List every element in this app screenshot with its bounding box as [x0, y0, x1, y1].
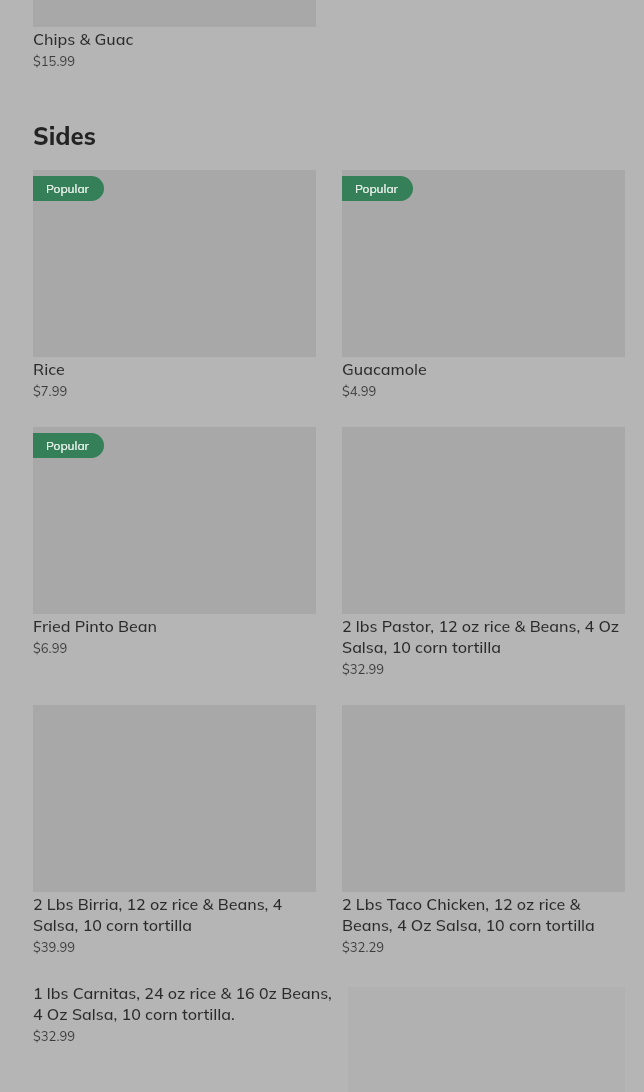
- staticText: Popular: [355, 181, 398, 196]
- staticText: 2 Lbs Taco Chicken, 12 oz rice & Beans, …: [342, 894, 625, 935]
- button[interactable]: Popular: [342, 170, 625, 399]
- staticText: $15.99: [33, 53, 76, 69]
- staticText: 2 Lbs Birria, 12 oz rice & Beans, 4 Sals…: [33, 894, 316, 935]
- staticText: 1 lbs Carnitas, 24 oz rice & 16 0z Beans…: [33, 983, 339, 1024]
- staticText: Chips & Guac: [33, 29, 134, 49]
- staticText: Popular: [46, 181, 89, 196]
- button[interactable]: 1 lbs Carnitas, 24 oz rice & 16 0z Beans…: [33, 983, 339, 1044]
- button[interactable]: Popular: [33, 427, 316, 656]
- staticText: $39.99: [33, 939, 76, 955]
- staticText: Popular: [46, 438, 89, 453]
- button[interactable]: 2 lbs Pastor, 12 oz rice & Beans, 4 Oz S…: [342, 427, 625, 677]
- button[interactable]: Popular: [33, 170, 316, 399]
- button[interactable]: Chips & Guac: [33, 0, 316, 69]
- staticText: $32.29: [342, 939, 385, 955]
- staticText: Fried Pinto Bean: [33, 616, 157, 636]
- button[interactable]: 2 Lbs Taco Chicken, 12 oz rice & Beans, …: [342, 705, 625, 955]
- button[interactable]: 2 Lbs Birria, 12 oz rice & Beans, 4 Sals…: [33, 705, 316, 955]
- staticText: Sides: [33, 121, 96, 151]
- staticText: $6.99: [33, 640, 68, 656]
- staticText: $4.99: [342, 383, 377, 399]
- staticText: $7.99: [33, 383, 68, 399]
- staticText: $32.99: [342, 661, 385, 677]
- staticText: 2 lbs Pastor, 12 oz rice & Beans, 4 Oz S…: [342, 616, 625, 657]
- staticText: $32.99: [33, 1028, 76, 1044]
- staticText: Guacamole: [342, 359, 427, 379]
- staticText: Rice: [33, 359, 65, 379]
